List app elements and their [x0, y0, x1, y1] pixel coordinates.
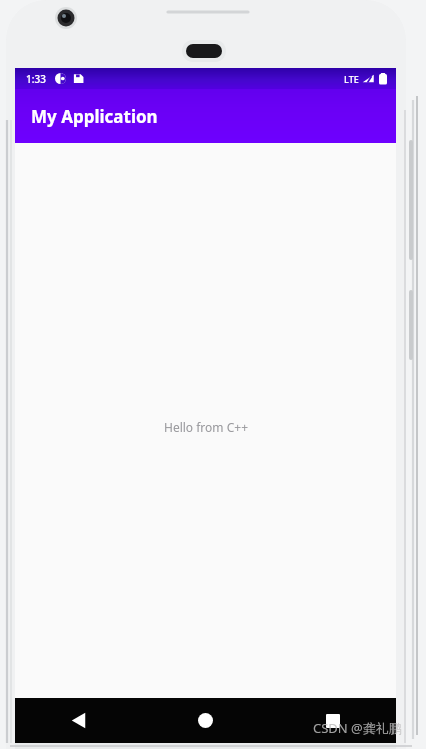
button[interactable]: Recent apps [269, 698, 396, 743]
staticText: Hello from C++ [164, 419, 248, 435]
staticText: 1:33 [26, 72, 46, 86]
staticText: LTE [344, 73, 359, 85]
button[interactable]: Back [15, 698, 142, 743]
staticText: CSDN @龚礼鹏 [313, 719, 402, 737]
staticText: My Application [31, 105, 158, 128]
button[interactable]: Home [142, 698, 269, 743]
